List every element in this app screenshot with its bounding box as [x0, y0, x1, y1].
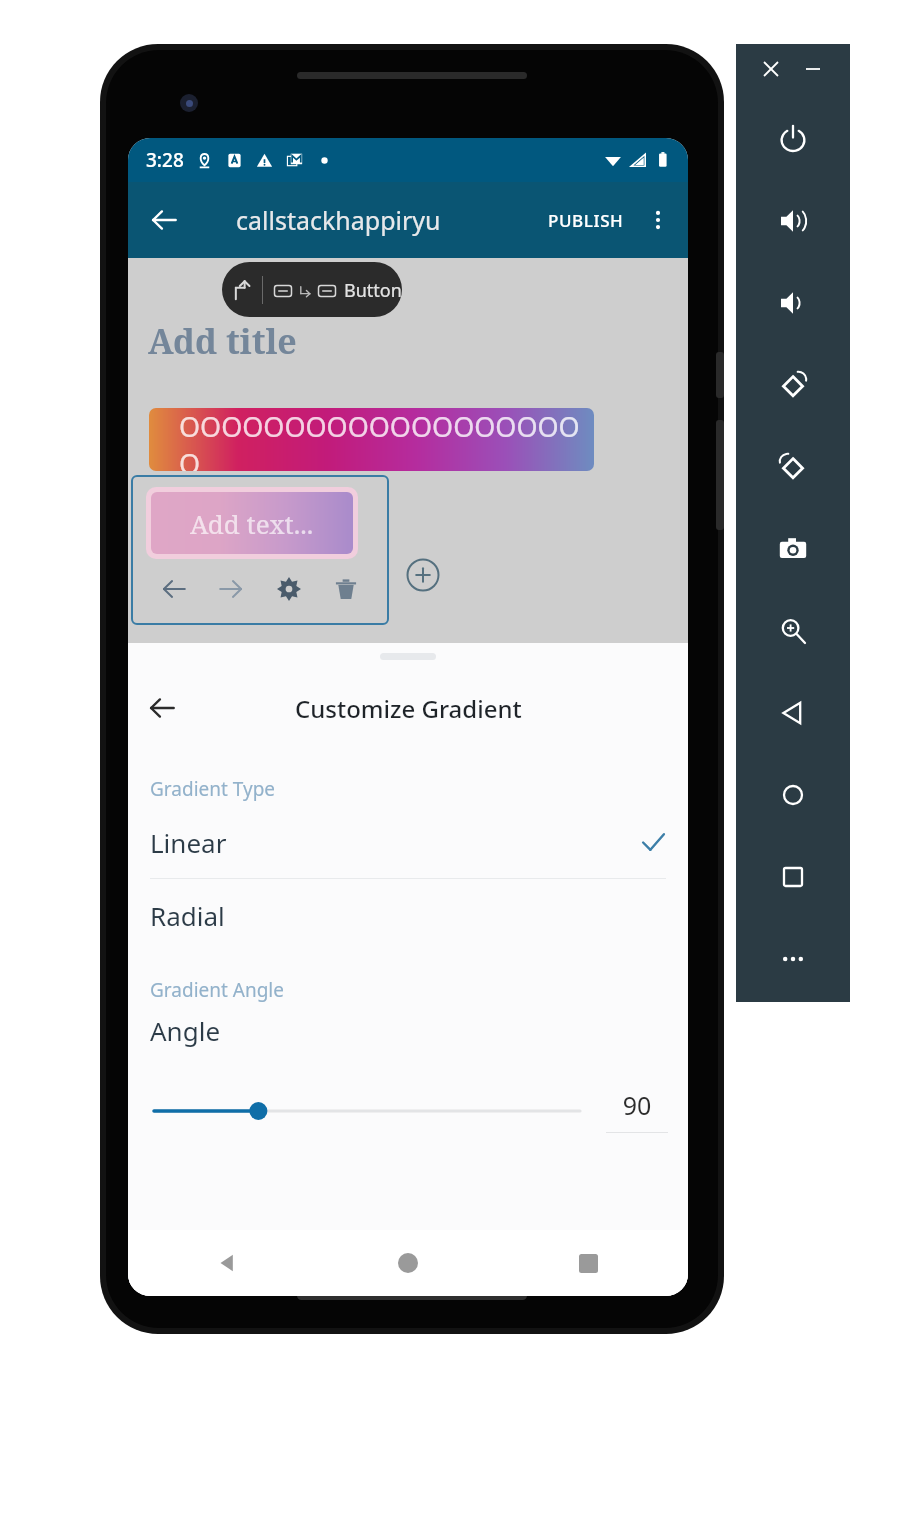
staticText: Customize Gradient [295, 692, 522, 725]
staticText: PUBLISH [548, 209, 624, 232]
staticText: 90 [606, 1088, 668, 1122]
staticText: OOOOOOOOOOOOOOOOOOOO [179, 408, 594, 471]
button[interactable]: More [768, 934, 818, 984]
staticText: Radial [150, 898, 225, 933]
staticText: callstackhappiryu [236, 203, 441, 237]
button[interactable]: Move left [153, 568, 195, 610]
button[interactable]: Close [758, 56, 784, 82]
button[interactable]: Linear [128, 806, 688, 878]
button[interactable]: Power [768, 114, 818, 164]
button[interactable]: Back [768, 688, 818, 738]
button[interactable]: Button [273, 278, 402, 303]
button[interactable]: Add element [404, 556, 442, 594]
button[interactable]: Minimize [800, 56, 826, 82]
button[interactable]: PUBLISH [542, 201, 630, 240]
button[interactable]: Zoom [768, 606, 818, 656]
staticText: Button [344, 278, 402, 303]
button[interactable]: Home [386, 1241, 430, 1285]
button[interactable] [154, 1094, 580, 1128]
button[interactable]: Move up [222, 270, 262, 310]
button[interactable]: Move right [210, 568, 252, 610]
staticText: Angle [150, 1013, 221, 1048]
staticText: Gradient Angle [150, 977, 284, 1003]
staticText: Add text... [190, 506, 314, 541]
button[interactable]: Volume down [768, 278, 818, 328]
button[interactable]: Back [140, 686, 184, 730]
button[interactable]: Settings [268, 568, 310, 610]
button[interactable]: Recents [566, 1241, 610, 1285]
staticText: Add title [148, 318, 297, 364]
button[interactable]: Home [768, 770, 818, 820]
staticText: Linear [150, 825, 227, 860]
button[interactable]: Back [206, 1241, 250, 1285]
button[interactable]: Radial [128, 879, 688, 951]
button[interactable]: More options [636, 198, 680, 242]
staticText: Gradient Type [150, 776, 276, 802]
button[interactable]: Volume up [768, 196, 818, 246]
button[interactable]: Overview [768, 852, 818, 902]
button[interactable]: Add text... [146, 487, 358, 559]
button[interactable]: Rotate left [768, 360, 818, 410]
button[interactable]: OOOOOOOOOOOOOOOOOOOO [149, 408, 594, 471]
button[interactable]: Back [140, 196, 188, 244]
button[interactable]: Rotate right [768, 442, 818, 492]
staticText: 3:28 [146, 147, 184, 173]
button[interactable]: Delete [325, 568, 367, 610]
button[interactable]: Screenshot [768, 524, 818, 574]
